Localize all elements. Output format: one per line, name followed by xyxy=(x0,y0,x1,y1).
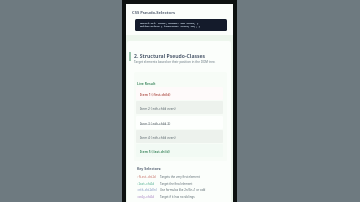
staticText: Targets the very first element xyxy=(160,175,200,179)
button[interactable]: Item 1 (:first-child) xyxy=(136,87,223,100)
staticText: :last-child xyxy=(137,182,155,186)
button[interactable]: Item 2 (:nth-child even) xyxy=(136,101,223,114)
button[interactable]: Item 3 (:nth-child 3) xyxy=(136,116,223,129)
staticText: Use formulas like 2n/3n+1 or odd xyxy=(160,188,206,192)
staticText: Target elements based on their position … xyxy=(134,60,216,64)
button[interactable]: Item 5 (:last-child) xyxy=(136,144,223,157)
staticText: object-fit: cover; border: 2px solid; } xyxy=(140,21,199,24)
staticText: :only-child xyxy=(137,195,155,199)
staticText: Item 2 (:nth-child even) xyxy=(140,106,176,110)
staticText: Item 4 (:nth-child even) xyxy=(140,135,176,139)
staticText: Item 3 (:nth-child 3) xyxy=(140,121,171,125)
button[interactable]: Item 4 (:nth-child even) xyxy=(136,130,223,143)
staticText: Live Result xyxy=(137,81,156,86)
staticText: Target if it has no siblings xyxy=(160,195,195,199)
staticText: Target the final element xyxy=(160,182,193,186)
staticText: Item 1 (:first-child) xyxy=(140,92,171,96)
staticText: :first-child xyxy=(137,175,156,179)
staticText: Item 5 (:last-child) xyxy=(140,149,170,153)
staticText: button:active { transform: scale(.95); } xyxy=(140,24,201,27)
staticText: :nth-child(n) xyxy=(137,188,158,192)
staticText: 2. Structural Pseudo-Classes xyxy=(134,53,206,60)
staticText: CSS Pseudo-Selectors xyxy=(132,10,176,16)
staticText: Key Selectors: xyxy=(137,166,162,171)
